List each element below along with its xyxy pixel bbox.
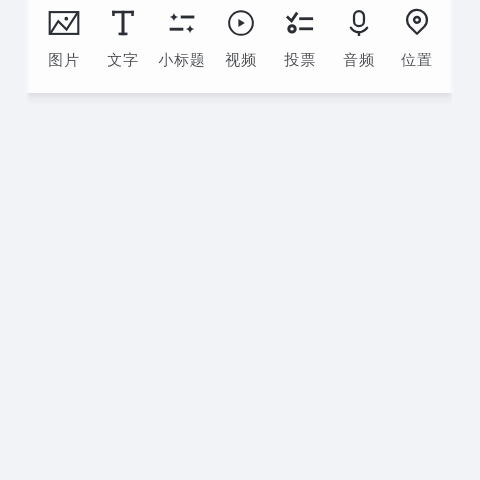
- staticText: 位置: [401, 51, 433, 70]
- button[interactable]: Insert location: [388, 0, 445, 93]
- staticText: 音频: [343, 51, 375, 70]
- staticText: 图片: [48, 51, 80, 70]
- staticText: 视频: [225, 51, 257, 70]
- staticText: 文字: [107, 51, 139, 70]
- button[interactable]: Insert picture: [34, 0, 93, 93]
- button[interactable]: Insert text: [93, 0, 152, 93]
- staticText: 投票: [284, 51, 316, 70]
- button[interactable]: Insert video: [211, 0, 270, 93]
- button[interactable]: Insert audio: [329, 0, 388, 93]
- button[interactable]: Insert poll: [270, 0, 329, 93]
- staticText: 小标题: [158, 51, 206, 70]
- button[interactable]: Insert subtitle: [152, 0, 211, 93]
